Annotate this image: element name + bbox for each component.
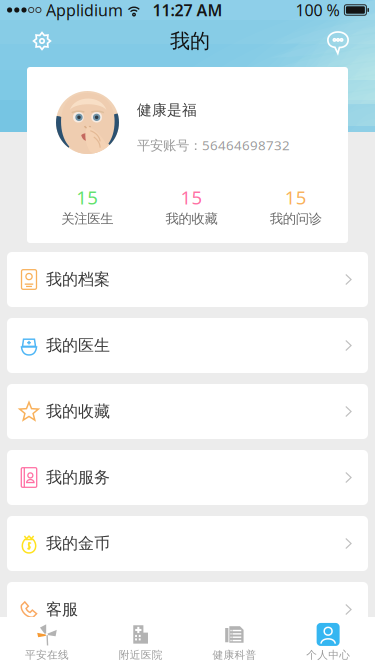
staticText: 我的收藏 [46,402,110,421]
button[interactable]: 15 [35,189,139,223]
button[interactable]: 客服 [7,582,368,637]
staticText: 健康是福 [137,101,197,119]
staticText: 15 [285,185,307,210]
staticText: 个人中心 [306,648,350,661]
button[interactable]: 15 [244,189,348,223]
button[interactable]: 健康科普 [187,617,281,666]
button[interactable]: 平安在线 [0,617,94,666]
staticText: 15 [76,185,98,210]
button[interactable]: 个人中心 [281,617,375,666]
staticText: 15 [180,185,202,210]
staticText: 关注医生 [61,211,113,227]
staticText: Applidium [46,0,123,21]
button[interactable]: 我的档案 [7,252,368,307]
staticText: 我的收藏 [165,211,217,227]
staticText: 附近医院 [119,648,163,661]
staticText: 11:27 AM [152,0,222,21]
staticText: 平安账号：56464698732 [137,136,290,154]
staticText: 100 % [295,0,339,21]
staticText: 我的档案 [46,270,110,289]
button[interactable]: Messages [317,21,359,61]
staticText: 我的 [170,29,210,53]
button[interactable]: 我的医生 [7,318,368,373]
button[interactable]: 我的收藏 [7,384,368,439]
button[interactable]: 我的服务 [7,450,368,505]
button[interactable]: Settings [21,21,63,61]
button[interactable]: 附近医院 [94,617,188,666]
button[interactable]: 我的金币 [7,516,368,571]
staticText: 健康科普 [212,648,256,661]
staticText: 客服 [46,600,78,619]
staticText: 我的问诊 [270,211,322,227]
staticText: 平安在线 [25,648,69,661]
staticText: 我的服务 [46,468,110,487]
button[interactable]: 15 [139,189,244,223]
staticText: 我的医生 [46,336,110,355]
staticText: 我的金币 [46,534,110,553]
